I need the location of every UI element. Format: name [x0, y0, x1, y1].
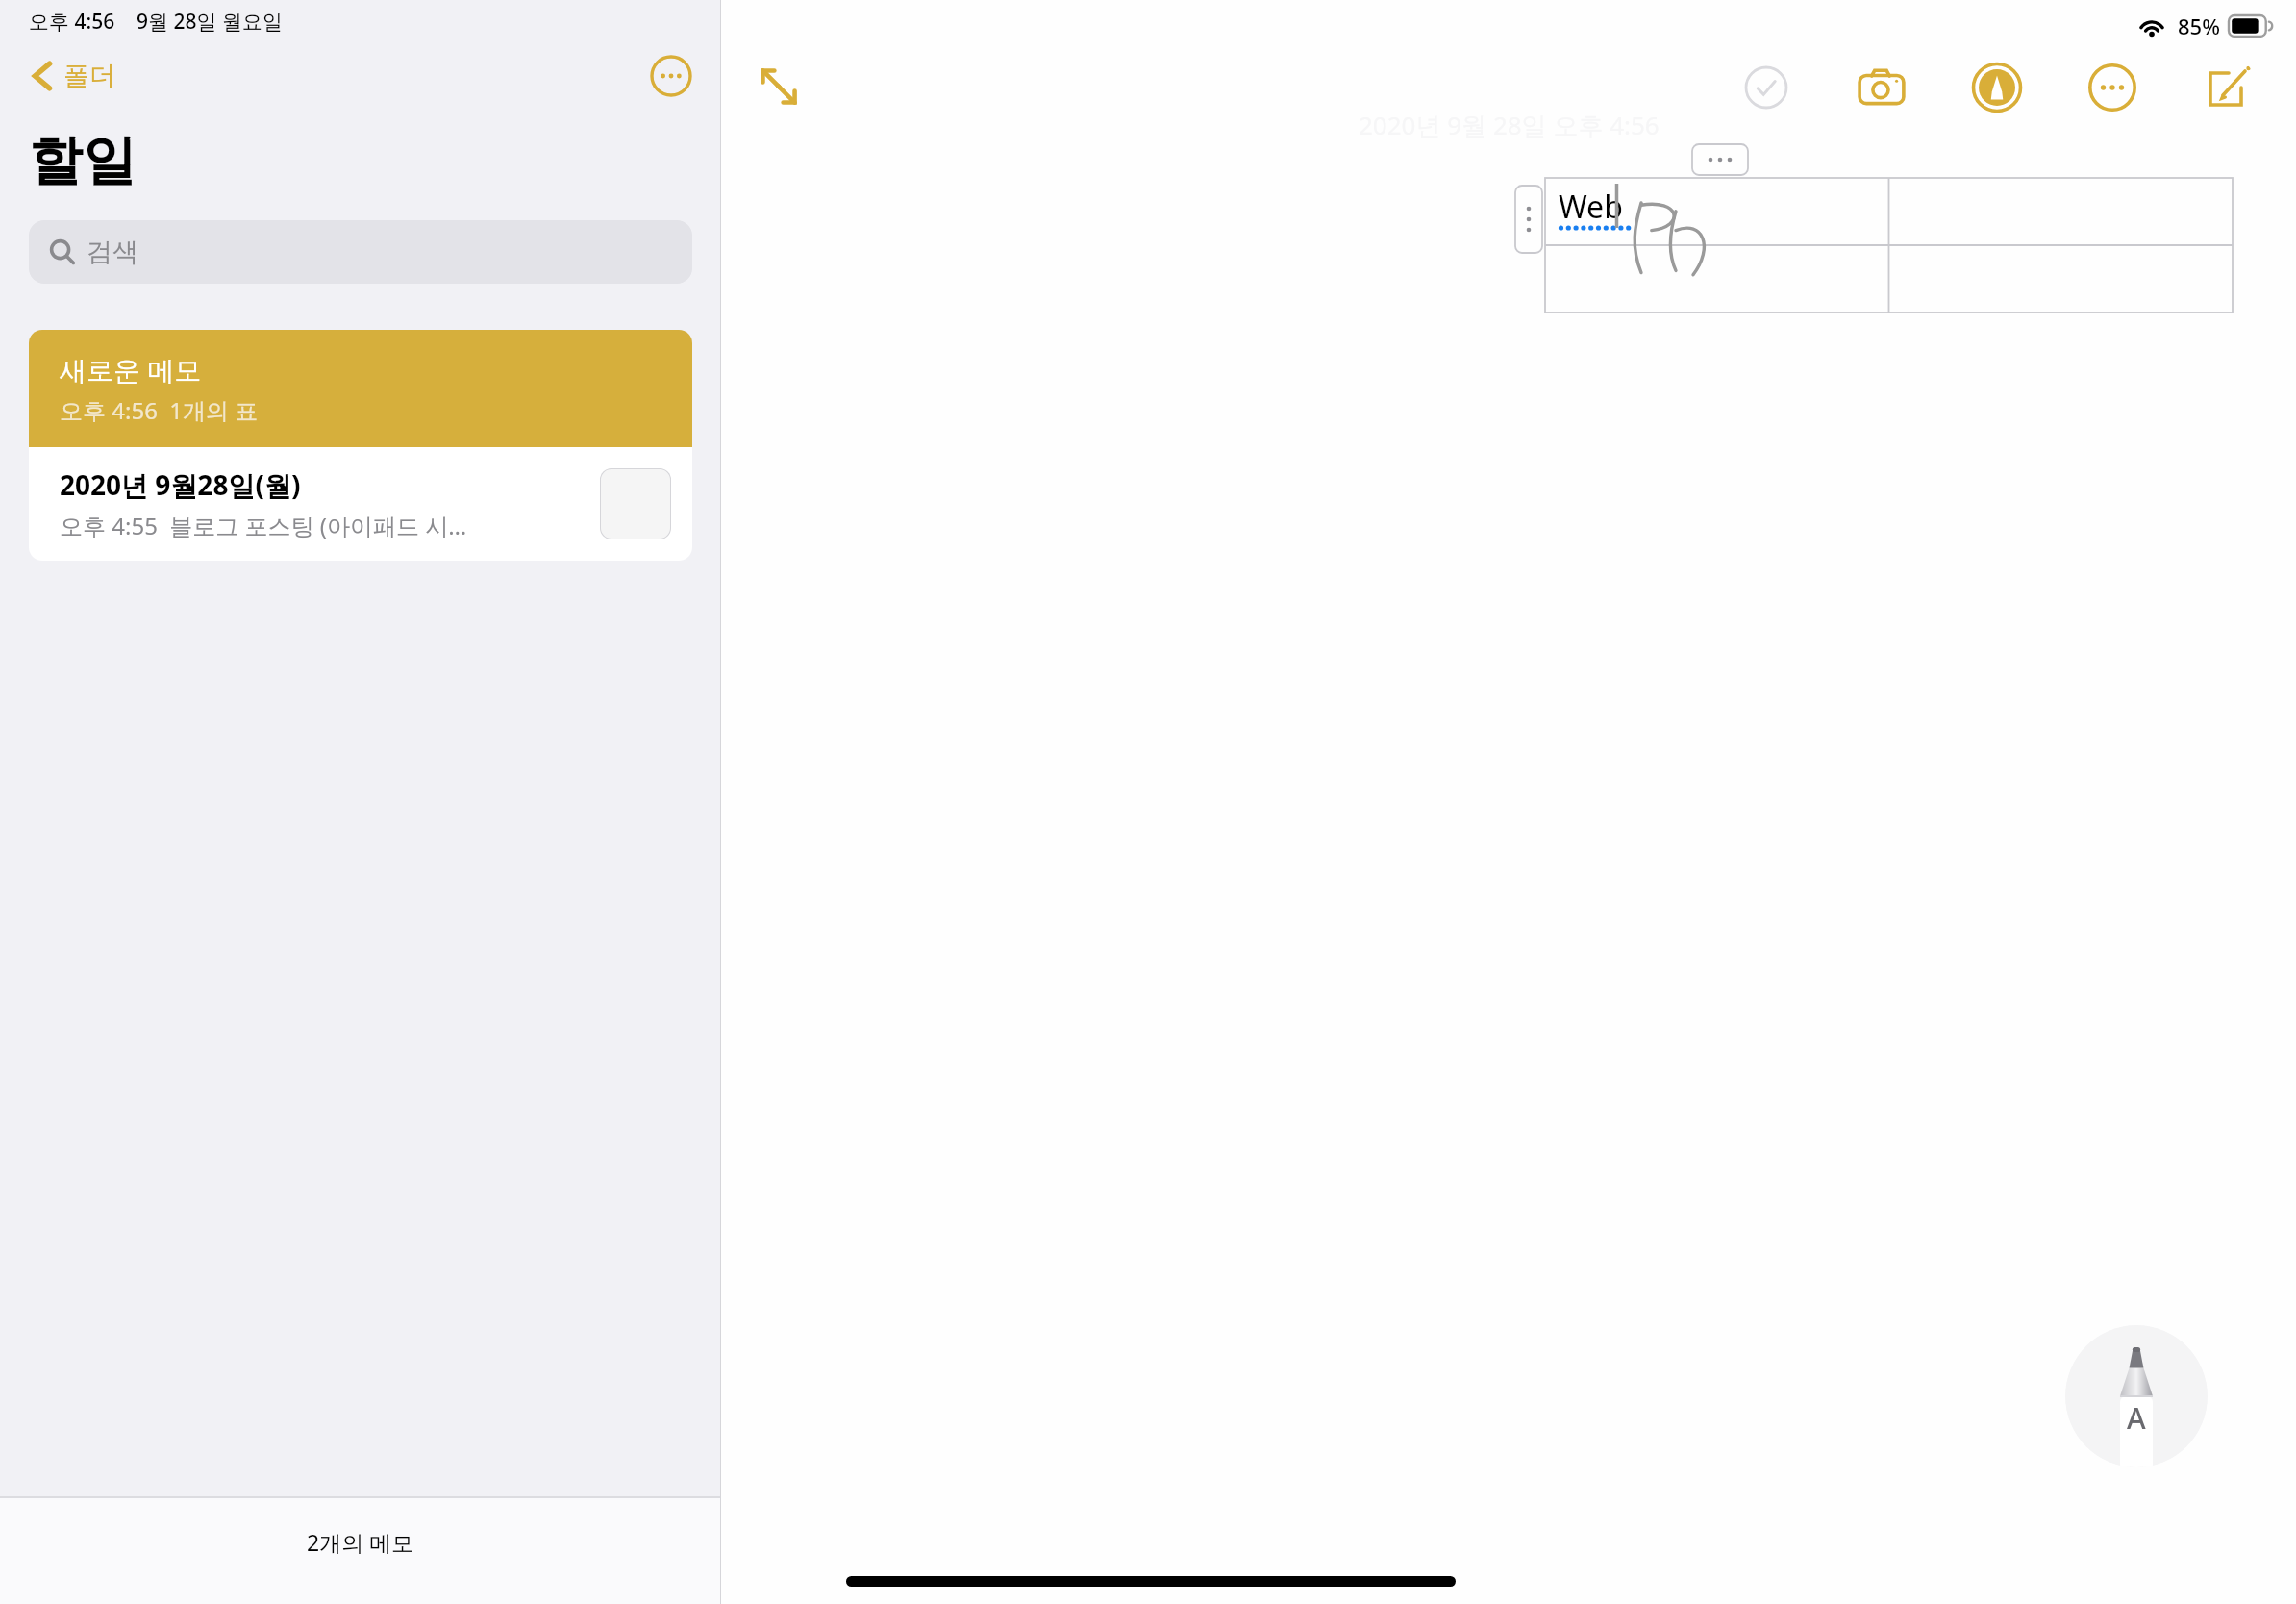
button[interactable]: 검색 — [29, 220, 692, 284]
button[interactable]: 새로운 메모 — [2198, 58, 2258, 117]
button[interactable]: 마크업 — [1967, 58, 2027, 117]
staticText: Web — [1559, 186, 1623, 228]
staticText: 2020년 9월28일(월) — [60, 466, 301, 503]
button[interactable]: 새로운 메모 — [29, 330, 692, 447]
button[interactable]: 카메라 — [1852, 58, 1911, 117]
staticText: 85% — [2178, 12, 2220, 40]
staticText: 할일 — [29, 127, 137, 195]
button[interactable]: 더 보기 — [648, 53, 694, 99]
button[interactable]: 더 보기 — [2083, 58, 2142, 117]
button[interactable]: 2020년 9월28일(월) — [29, 447, 692, 561]
button[interactable]: 스크리블 손글씨 — [2065, 1325, 2208, 1467]
staticText: 폴더 — [63, 60, 115, 92]
staticText: 오후 4:56 1개의 표 — [60, 394, 259, 426]
button[interactable]: 열 옵션 — [1692, 144, 1748, 175]
staticText: A — [2127, 1398, 2146, 1438]
staticText: 9월 28일 월요일 — [137, 8, 283, 36]
button[interactable]: 전체 화면 — [750, 58, 808, 115]
staticText: 오후 4:55 블로그 포스팅 (아이패드 시… — [60, 510, 467, 541]
button[interactable]: 완료 체크 — [1736, 58, 1796, 117]
staticText: 검색 — [87, 236, 138, 268]
staticText: 오후 4:56 — [29, 8, 115, 36]
staticText: 새로운 메모 — [60, 351, 202, 388]
button[interactable]: 폴더 — [27, 54, 121, 98]
button[interactable]: 행 옵션 — [1515, 186, 1542, 253]
staticText: 2개의 메모 — [307, 1527, 414, 1557]
